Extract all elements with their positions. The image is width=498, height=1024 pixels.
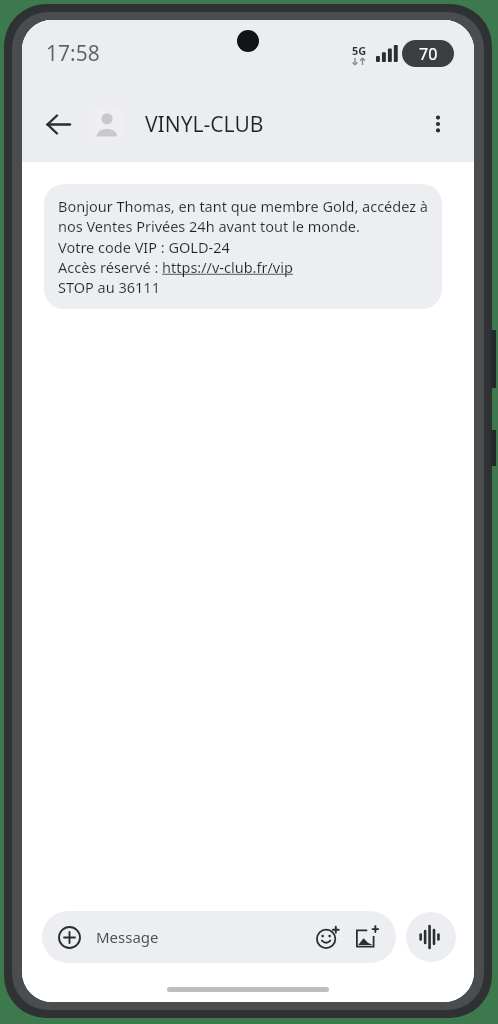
staticText: Accès réservé : https://v-club.fr/vip: [58, 257, 293, 277]
staticText: 17:58: [46, 39, 100, 68]
button[interactable]: Emoji: [312, 922, 342, 952]
staticText: Votre code VIP : GOLD-24: [58, 237, 230, 257]
button[interactable]: Bonjour Thomas, en tant que membre Gold,…: [44, 184, 442, 309]
staticText: Bonjour Thomas, en tant que membre Gold,…: [58, 196, 428, 237]
staticText: 5G: [352, 43, 367, 58]
button[interactable]: Attach: [56, 924, 82, 950]
button[interactable]: Back: [36, 102, 80, 146]
button[interactable]: Attach: [42, 911, 396, 963]
staticText: 70: [419, 43, 438, 65]
button[interactable]: Contact avatar: [88, 105, 126, 143]
button[interactable]: Record voice message: [406, 912, 456, 962]
button[interactable]: Add image: [352, 922, 382, 952]
button[interactable]: More options: [416, 102, 460, 146]
button[interactable]: VINYL-CLUB: [145, 110, 416, 139]
staticText: Message: [96, 927, 312, 947]
staticText: STOP au 36111: [58, 277, 160, 297]
